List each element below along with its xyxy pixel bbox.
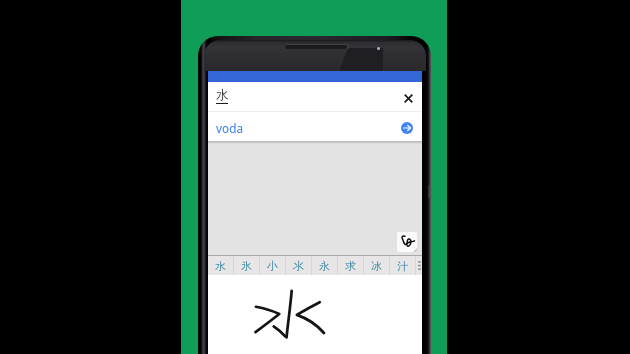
button[interactable]: Candidate 5: [312, 256, 337, 275]
staticText: 求: [345, 259, 356, 273]
staticText: 氷: [241, 259, 252, 273]
button[interactable]: [208, 275, 422, 354]
staticText: 氺: [293, 259, 304, 273]
button[interactable]: Translate: [401, 122, 413, 134]
button[interactable]: Clear text: [402, 92, 415, 105]
staticText: voda: [216, 120, 244, 136]
staticText: 小: [267, 259, 278, 273]
staticText: 永: [319, 259, 330, 273]
staticText: 汁: [397, 259, 408, 273]
button[interactable]: Candidate 8: [390, 256, 415, 275]
staticText: 水: [215, 259, 226, 273]
button[interactable]: Candidate 6: [338, 256, 363, 275]
button[interactable]: Candidate 3: [260, 256, 285, 275]
button[interactable]: voda: [208, 112, 422, 141]
button[interactable]: Candidate 7: [364, 256, 389, 275]
button[interactable]: Handwriting input: [397, 232, 417, 252]
button[interactable]: More candidates: [416, 256, 422, 275]
button[interactable]: Candidate 2: [234, 256, 259, 275]
staticText: 水: [216, 87, 229, 103]
button[interactable]: Candidate 1: [208, 256, 233, 275]
button[interactable]: Candidate 4: [286, 256, 311, 275]
staticText: 冰: [371, 259, 382, 273]
button[interactable]: 水: [208, 82, 422, 111]
